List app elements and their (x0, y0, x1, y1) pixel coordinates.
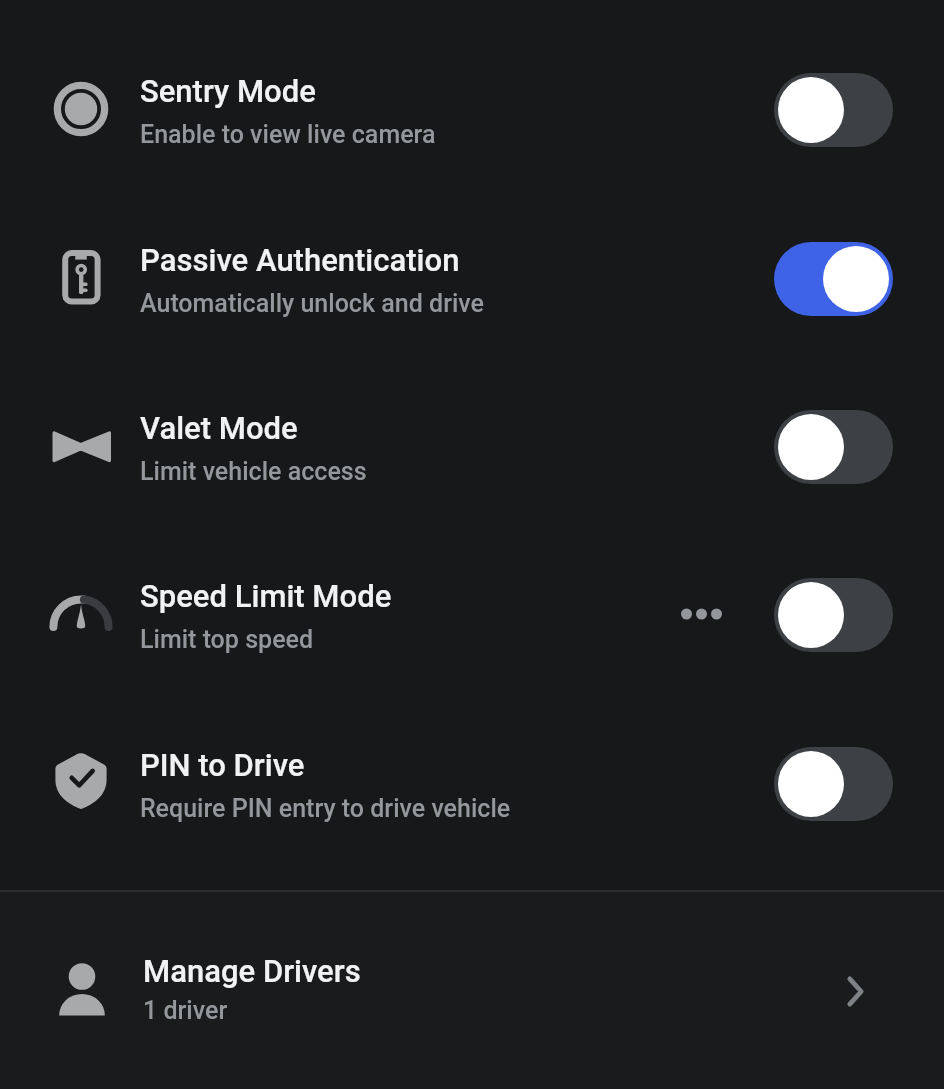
button[interactable]: Toggle, on (774, 242, 893, 316)
button[interactable]: Sentry Mode (0, 35, 944, 185)
staticText: Limit top speed (140, 625, 314, 654)
button[interactable]: Toggle, off (774, 747, 893, 821)
staticText: Passive Authentication (140, 242, 460, 278)
button[interactable]: Open Manage Drivers (805, 941, 905, 1041)
staticText: Speed Limit Mode (140, 578, 392, 614)
button[interactable]: PIN to Drive (0, 709, 944, 859)
staticText: PIN to Drive (140, 747, 305, 783)
button[interactable]: Toggle, off (774, 578, 893, 652)
button[interactable]: Valet Mode (0, 372, 944, 522)
staticText: 1 driver (143, 996, 228, 1025)
button[interactable]: More options (656, 569, 746, 659)
button[interactable]: Manage Drivers (0, 891, 944, 1089)
button[interactable]: Toggle, off (774, 73, 893, 147)
staticText: Valet Mode (140, 410, 298, 446)
staticText: Enable to view live camera (140, 120, 436, 149)
staticText: Manage Drivers (143, 953, 361, 989)
staticText: Automatically unlock and drive (140, 289, 484, 318)
staticText: Require PIN entry to drive vehicle (140, 794, 511, 823)
button[interactable]: Passive Authentication (0, 204, 944, 354)
button[interactable]: Speed Limit Mode (0, 540, 944, 690)
button[interactable]: Toggle, off (774, 410, 893, 484)
staticText: Limit vehicle access (140, 457, 367, 486)
staticText: Sentry Mode (140, 73, 316, 109)
